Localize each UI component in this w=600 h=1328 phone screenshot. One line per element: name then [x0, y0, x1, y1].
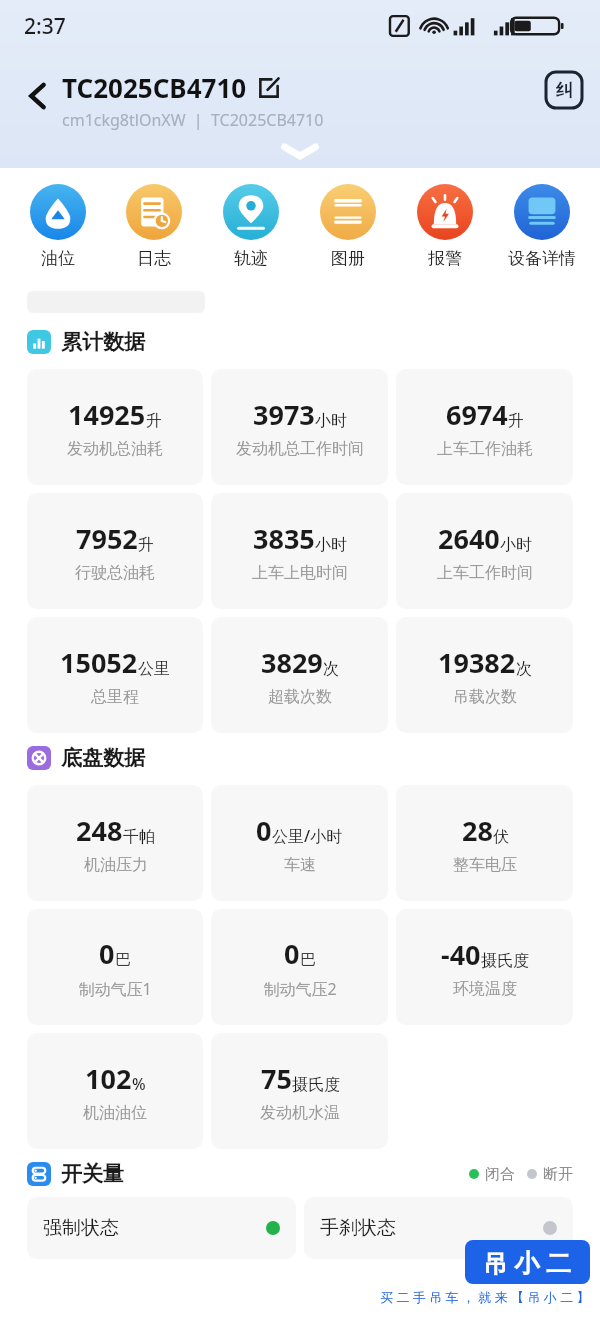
button[interactable]: 7952 — [27, 493, 203, 609]
staticText: 2640 — [438, 520, 500, 557]
staticText: 15052 — [60, 644, 138, 681]
staticText: 升 — [138, 535, 154, 555]
staticText: 75 — [261, 1060, 292, 1097]
button[interactable]: 强制状态 — [27, 1197, 296, 1259]
staticText: 底盘数据 — [61, 745, 145, 771]
button[interactable]: 设备详情 — [493, 182, 590, 271]
staticText: 上车上电时间 — [252, 563, 348, 583]
button[interactable]: Edit — [257, 76, 281, 100]
staticText: 0 — [99, 935, 115, 972]
staticText: 吊载次数 — [453, 687, 517, 707]
staticText: 小时 — [315, 535, 347, 555]
staticText: 小时 — [315, 411, 347, 431]
staticText: 3829 — [261, 644, 323, 681]
button[interactable]: Back — [10, 68, 66, 124]
staticText: 环境温度 — [453, 979, 517, 999]
staticText: 机油油位 — [83, 1103, 147, 1123]
button[interactable]: 轨迹 — [202, 182, 299, 271]
button[interactable]: 6974 — [396, 369, 573, 485]
staticText: 28 — [462, 812, 493, 849]
button[interactable]: Report — [546, 72, 582, 108]
staticText: 巴 — [115, 950, 131, 970]
staticText: 发动机总工作时间 — [236, 439, 364, 459]
button[interactable]: 2640 — [396, 493, 573, 609]
button[interactable]: 0 — [27, 909, 203, 1025]
staticText: 车速 — [284, 855, 316, 875]
staticText: 2:37 — [24, 12, 66, 41]
staticText: 公里/小时 — [272, 825, 343, 847]
staticText: -40 — [441, 936, 481, 973]
staticText: 行驶总油耗 — [75, 563, 155, 583]
staticText: 整车电压 — [453, 855, 517, 875]
staticText: % — [132, 1073, 146, 1095]
staticText: 7952 — [76, 520, 138, 557]
button[interactable]: 0 — [211, 909, 388, 1025]
staticText: 巴 — [300, 950, 316, 970]
button[interactable]: 油位 — [10, 182, 106, 271]
staticText: 超载次数 — [268, 687, 332, 707]
staticText: 千帕 — [123, 827, 155, 847]
staticText: 闭合 — [485, 1165, 515, 1184]
staticText: 公里 — [138, 659, 170, 679]
button[interactable]: 手刹状态 — [304, 1197, 573, 1259]
staticText: 发动机水温 — [260, 1103, 340, 1123]
staticText: TC2025CB4710 — [62, 70, 247, 105]
button[interactable]: 102 — [27, 1033, 203, 1149]
staticText: 轨迹 — [234, 248, 268, 269]
staticText: 油位 — [41, 248, 75, 269]
staticText: 总里程 — [91, 687, 139, 707]
staticText: 升 — [146, 411, 162, 431]
staticText: 102 — [85, 1060, 132, 1097]
staticText: 摄氏度 — [292, 1075, 340, 1095]
staticText: 0 — [256, 812, 272, 849]
staticText: 累计数据 — [61, 329, 145, 355]
staticText: 发动机总油耗 — [67, 439, 163, 459]
staticText: 吊 小 二 — [483, 1245, 572, 1279]
button[interactable]: 3835 — [211, 493, 388, 609]
button[interactable]: 3829 — [211, 617, 388, 733]
staticText: 摄氏度 — [481, 951, 529, 971]
staticText: 日志 — [137, 248, 171, 269]
staticText: 纠 — [556, 80, 573, 101]
staticText: 0 — [284, 935, 300, 972]
staticText: 上车工作时间 — [437, 563, 533, 583]
staticText: 制动气压1 — [78, 978, 152, 1000]
staticText: 上车工作油耗 — [437, 439, 533, 459]
staticText: 3835 — [253, 520, 315, 557]
button[interactable]: 0 — [211, 785, 388, 901]
staticText: 报警 — [428, 248, 462, 269]
staticText: 设备详情 — [508, 248, 576, 269]
button[interactable]: -40 — [396, 909, 573, 1025]
staticText: 升 — [508, 411, 524, 431]
staticText: 次 — [516, 659, 532, 679]
staticText: 买 二 手 吊 车 ， 就 来 【 吊 小 二 】 — [380, 1288, 590, 1306]
staticText: 小时 — [500, 535, 532, 555]
button[interactable]: 报警 — [396, 182, 493, 271]
staticText: 图册 — [331, 248, 365, 269]
staticText: 断开 — [543, 1165, 573, 1184]
staticText: 强制状态 — [43, 1216, 119, 1240]
staticText: 开关量 — [61, 1161, 124, 1187]
staticText: 手刹状态 — [320, 1216, 396, 1240]
button[interactable]: 图册 — [299, 182, 396, 271]
staticText: 14925 — [68, 396, 146, 433]
button[interactable]: 3973 — [211, 369, 388, 485]
button[interactable]: 15052 — [27, 617, 203, 733]
staticText: 6974 — [446, 396, 508, 433]
button[interactable]: 28 — [396, 785, 573, 901]
staticText: 制动气压2 — [263, 978, 337, 1000]
staticText: 248 — [76, 812, 123, 849]
button[interactable]: 14925 — [27, 369, 203, 485]
button[interactable]: 19382 — [396, 617, 573, 733]
button[interactable]: 75 — [211, 1033, 388, 1149]
staticText: cm1ckg8tlOnXW | TC2025CB4710 — [62, 109, 324, 131]
staticText: 伏 — [493, 827, 509, 847]
button[interactable]: 248 — [27, 785, 203, 901]
staticText: 次 — [323, 659, 339, 679]
staticText: 机油压力 — [84, 855, 148, 875]
button[interactable]: 日志 — [106, 182, 202, 271]
staticText: 3973 — [253, 396, 315, 433]
staticText: 19382 — [438, 644, 516, 681]
